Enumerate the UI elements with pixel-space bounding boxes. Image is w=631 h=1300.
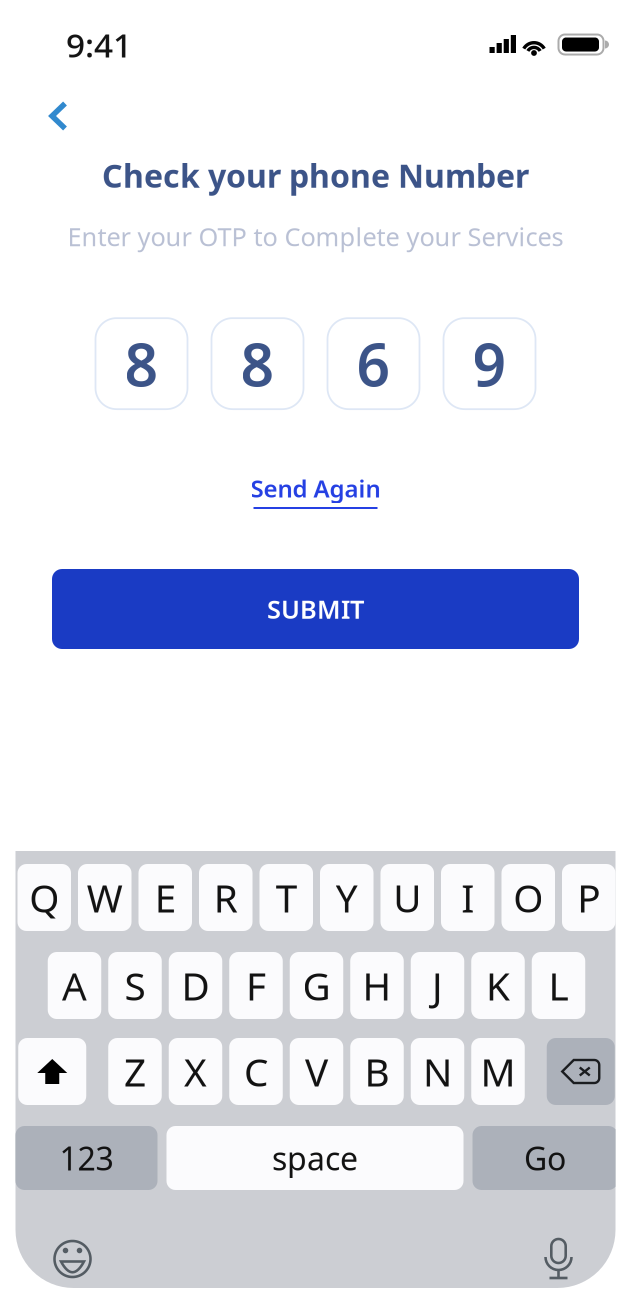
button[interactable]: 9	[443, 318, 535, 409]
button[interactable]: J	[411, 952, 464, 1019]
staticText: N	[423, 1046, 452, 1097]
staticText: F	[246, 960, 266, 1011]
staticText: B	[364, 1046, 389, 1097]
staticText: K	[486, 960, 510, 1011]
button[interactable]: Dictate	[543, 1228, 616, 1290]
button[interactable]: space	[166, 1126, 463, 1190]
staticText: 6	[356, 325, 390, 403]
button[interactable]: N	[411, 1038, 464, 1105]
staticText: P	[577, 872, 600, 923]
staticText: O	[513, 872, 543, 923]
staticText: S	[124, 960, 145, 1011]
button[interactable]: H	[350, 952, 404, 1019]
staticText: Enter your OTP to Complete your Services	[67, 219, 563, 253]
button[interactable]: Emoji	[16, 1230, 91, 1288]
button[interactable]: Send Again	[240, 464, 390, 517]
button[interactable]: U	[380, 864, 434, 931]
staticText: R	[214, 872, 238, 923]
button[interactable]: M	[471, 1038, 525, 1105]
staticText: I	[461, 872, 474, 923]
button[interactable]: T	[259, 864, 313, 931]
button[interactable]: Go	[472, 1126, 617, 1190]
staticText: J	[432, 960, 443, 1011]
button[interactable]: W	[78, 864, 131, 931]
staticText: T	[276, 872, 297, 923]
staticText: Y	[336, 872, 358, 923]
staticText: L	[548, 960, 568, 1011]
button[interactable]: 123	[15, 1126, 157, 1190]
staticText: Go	[524, 1137, 566, 1179]
button[interactable]: X	[169, 1038, 222, 1105]
button[interactable]: Y	[320, 864, 373, 931]
staticText: X	[184, 1046, 207, 1097]
button[interactable]: G	[290, 952, 343, 1019]
staticText: 9:41	[66, 22, 132, 67]
staticText: space	[272, 1137, 358, 1179]
button[interactable]: F	[229, 952, 283, 1019]
button[interactable]: D	[169, 952, 222, 1019]
staticText: 8	[124, 325, 158, 403]
button[interactable]: P	[562, 864, 615, 931]
button[interactable]: Shift	[18, 1038, 86, 1105]
staticText: G	[302, 960, 330, 1011]
staticText: D	[181, 960, 209, 1011]
staticText: M	[480, 1046, 515, 1097]
staticText: Q	[29, 872, 59, 923]
button[interactable]: SUBMIT	[52, 569, 579, 649]
button[interactable]: I	[441, 864, 494, 931]
button[interactable]: A	[48, 952, 101, 1019]
button[interactable]: R	[199, 864, 252, 931]
button[interactable]: Q	[17, 864, 71, 931]
button[interactable]: K	[471, 952, 525, 1019]
staticText: V	[305, 1046, 328, 1097]
staticText: W	[87, 872, 123, 923]
button[interactable]: E	[138, 864, 192, 931]
staticText: 123	[59, 1137, 113, 1179]
button[interactable]: Z	[108, 1038, 162, 1105]
staticText: U	[393, 872, 421, 923]
staticText: Z	[124, 1046, 146, 1097]
staticText: H	[362, 960, 391, 1011]
staticText: SUBMIT	[267, 592, 364, 626]
button[interactable]: O	[501, 864, 555, 931]
staticText: 9	[472, 325, 506, 403]
staticText: Check your phone Number	[102, 154, 529, 196]
staticText: 8	[240, 325, 274, 403]
button[interactable]: 6	[327, 318, 419, 409]
staticText: E	[155, 872, 176, 923]
button[interactable]: 8	[95, 318, 187, 409]
button[interactable]: B	[350, 1038, 404, 1105]
button[interactable]: Delete	[547, 1038, 615, 1105]
staticText: Send Again	[250, 472, 380, 504]
button[interactable]: V	[290, 1038, 343, 1105]
staticText: A	[62, 960, 87, 1011]
button[interactable]: 8	[211, 318, 303, 409]
staticText: C	[244, 1046, 268, 1097]
button[interactable]: C	[229, 1038, 283, 1105]
button[interactable]: Back	[0, 89, 90, 143]
button[interactable]: L	[532, 952, 585, 1019]
button[interactable]: S	[108, 952, 162, 1019]
